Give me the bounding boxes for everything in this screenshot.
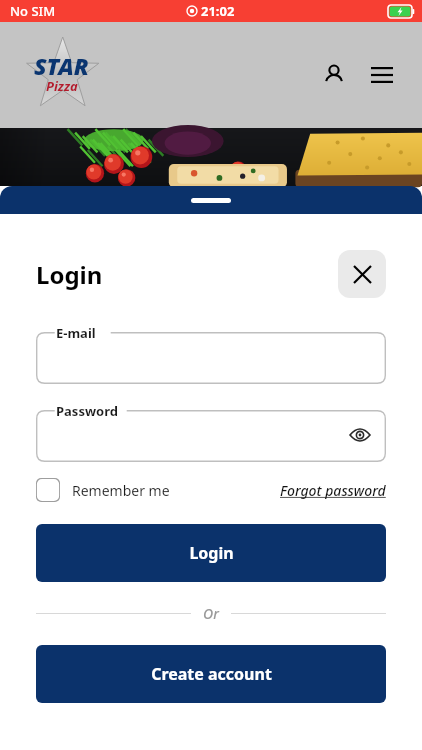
button[interactable]: Account (314, 55, 354, 95)
staticText: Login (189, 542, 234, 564)
staticText: Login (36, 258, 103, 291)
button[interactable]: Forgot password (280, 481, 386, 500)
button[interactable]: Close (338, 250, 386, 298)
staticText: No SIM (10, 2, 56, 20)
button[interactable]: Show password (346, 421, 374, 449)
button[interactable]: Remember me (36, 478, 170, 502)
staticText: Or (203, 604, 219, 623)
staticText: Remember me (72, 481, 170, 500)
button[interactable]: Menu (362, 55, 402, 95)
staticText: Pizza (46, 77, 78, 95)
staticText: 21:02 (201, 2, 235, 20)
button[interactable]: Login (36, 524, 386, 582)
staticText: E-mail (56, 324, 96, 342)
staticText: Create account (151, 663, 272, 685)
staticText: STAR (34, 50, 89, 81)
staticText: Password (56, 402, 118, 420)
button[interactable]: Create account (36, 645, 386, 703)
